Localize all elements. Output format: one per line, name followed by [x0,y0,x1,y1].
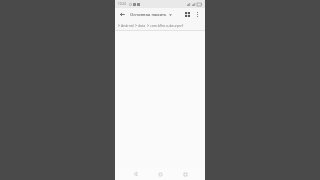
staticText: 10:24 [118,2,126,6]
button[interactable]: com.bflm.subsurpsrf [149,23,185,28]
button[interactable]: data [137,23,147,28]
button[interactable]: Android [120,23,135,28]
staticText: Основная память [130,12,167,18]
button[interactable]: Home [155,169,165,179]
button[interactable]: Основная память [130,12,183,18]
button[interactable]: Recent apps [180,169,190,179]
staticText: com.bflm.subsurpsrf [150,23,184,28]
staticText: data [138,23,146,28]
button[interactable]: Back [130,169,140,179]
button[interactable]: Back [118,10,127,19]
staticText: Android [121,23,134,28]
button[interactable]: View mode [183,10,192,19]
button[interactable]: More options [193,10,202,19]
